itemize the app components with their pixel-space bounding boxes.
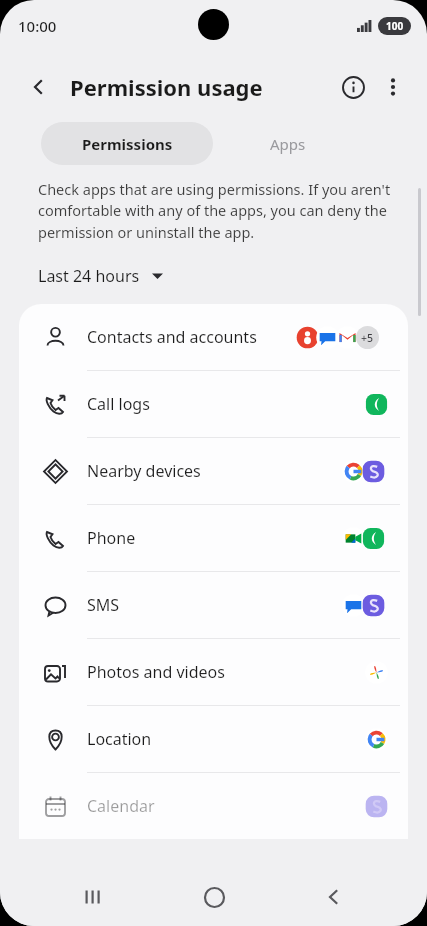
button[interactable]: Nearby devices bbox=[19, 438, 408, 504]
button[interactable]: Contacts and accounts bbox=[19, 304, 408, 370]
staticText: Permissions bbox=[82, 134, 173, 154]
staticText: Check apps that are using permissions. I… bbox=[38, 179, 395, 243]
staticText: SMS bbox=[87, 594, 342, 616]
button[interactable]: Location bbox=[19, 706, 408, 772]
button[interactable]: Apps bbox=[213, 122, 363, 165]
staticText: 10:00 bbox=[18, 16, 57, 36]
button[interactable]: Back bbox=[307, 870, 361, 924]
button[interactable]: Last 24 hours bbox=[38, 265, 163, 287]
button[interactable]: Home bbox=[187, 870, 241, 924]
staticText: Phone bbox=[87, 527, 342, 549]
staticText: Last 24 hours bbox=[38, 265, 140, 287]
staticText: Nearby devices bbox=[87, 460, 342, 482]
button[interactable]: Calendar bbox=[19, 773, 408, 839]
button[interactable]: Phone bbox=[19, 505, 408, 571]
button[interactable]: Information bbox=[333, 67, 373, 107]
button[interactable]: Call logs bbox=[19, 371, 408, 437]
staticText: Photos and videos bbox=[87, 661, 365, 683]
staticText: +5 bbox=[361, 331, 374, 345]
staticText: Call logs bbox=[87, 393, 365, 415]
button[interactable]: Photos and videos bbox=[19, 639, 408, 705]
staticText: 100 bbox=[386, 19, 404, 33]
button[interactable]: Permissions bbox=[41, 122, 213, 165]
button[interactable]: More options bbox=[373, 67, 413, 107]
staticText: Apps bbox=[270, 134, 306, 154]
button[interactable]: Back bbox=[22, 70, 56, 104]
staticText: Location bbox=[87, 728, 365, 750]
staticText: Contacts and accounts bbox=[87, 326, 296, 348]
staticText: Calendar bbox=[87, 795, 365, 817]
button[interactable]: SMS bbox=[19, 572, 408, 638]
button[interactable]: Recent apps bbox=[66, 870, 120, 924]
staticText: Permission usage bbox=[70, 72, 263, 102]
